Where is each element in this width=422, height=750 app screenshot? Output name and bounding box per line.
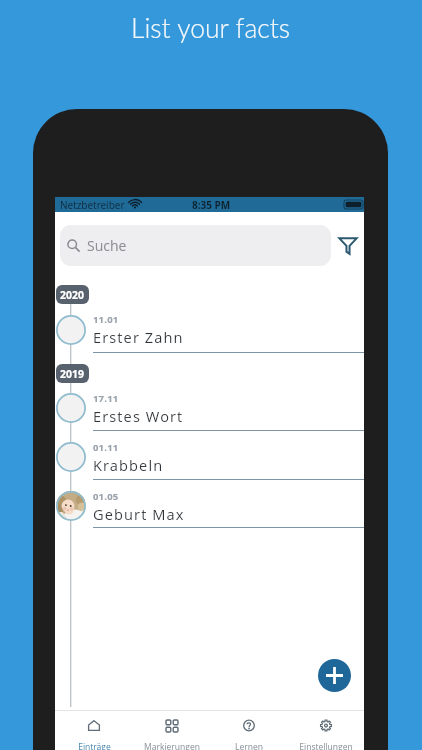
button[interactable]: Lernen — [210, 711, 287, 750]
staticText: Einstellungen — [299, 741, 353, 750]
staticText: 01.11 — [93, 441, 119, 454]
staticText: Krabbeln — [93, 455, 164, 475]
staticText: Erster Zahn — [93, 327, 184, 347]
button[interactable] — [55, 436, 364, 479]
staticText: Suche — [87, 236, 127, 255]
button[interactable]: Add entry — [318, 659, 351, 692]
staticText: 11.01 — [93, 313, 119, 326]
button[interactable] — [55, 309, 364, 352]
staticText: Markierungen — [144, 741, 200, 750]
button[interactable]: Einstellungen — [287, 711, 364, 750]
button[interactable]: Einträge — [55, 711, 133, 750]
staticText: 8:35 PM — [192, 198, 231, 212]
staticText: Geburt Max — [93, 504, 185, 524]
staticText: Erstes Wort — [93, 406, 184, 426]
staticText: 17.11 — [93, 392, 119, 405]
button[interactable] — [55, 387, 364, 430]
staticText: 01.05 — [93, 490, 119, 503]
staticText: 2019 — [60, 367, 85, 381]
staticText: 2020 — [60, 288, 85, 302]
button[interactable]: Suche — [60, 225, 331, 266]
staticText: List your facts — [131, 12, 291, 44]
button[interactable]: Markierungen — [133, 711, 210, 750]
staticText: Lernen — [235, 741, 263, 750]
button[interactable] — [55, 485, 364, 528]
staticText: Einträge — [78, 741, 111, 750]
button[interactable]: Filter — [332, 225, 364, 266]
staticText: Netzbetreiber — [60, 198, 125, 212]
